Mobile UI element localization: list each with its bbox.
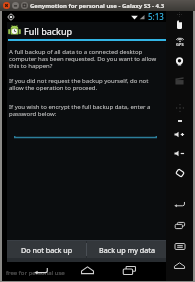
button[interactable]: Home: [166, 257, 193, 273]
button[interactable]: Volume down: [166, 145, 193, 161]
button[interactable]: Back up my data: [87, 241, 166, 258]
staticText: 5:13: [148, 11, 164, 22]
button[interactable]: Back: [166, 196, 193, 212]
button[interactable]: Battery: [166, 16, 193, 32]
button[interactable]: Recent apps: [166, 217, 193, 233]
button[interactable]: Minimize: [12, 2, 19, 9]
staticText: Do not back up: [21, 245, 73, 255]
button[interactable]: Recent apps: [116, 262, 142, 278]
staticText: Genymotion for personal use - Galaxy S3 …: [30, 2, 165, 10]
button[interactable]: Rotate screen: [166, 165, 193, 181]
staticText: GPS: [176, 42, 184, 47]
staticText: free for personal use: [6, 269, 65, 277]
button[interactable]: Home: [74, 262, 100, 278]
button[interactable]: Volume up: [166, 126, 193, 142]
staticText: Back up my data: [99, 245, 155, 255]
button[interactable]: Maximize: [21, 2, 28, 9]
button[interactable]: Menu: [166, 238, 193, 254]
staticText: If you wish to encrypt the full backup d…: [9, 103, 151, 118]
button[interactable]: Record video: [166, 73, 193, 89]
staticText: A full backup of all data to a connected…: [9, 48, 157, 70]
button[interactable]: Password field: [14, 130, 157, 139]
button[interactable]: Close: [3, 2, 10, 9]
button[interactable]: Divider: [166, 113, 193, 129]
button[interactable]: Move: [166, 100, 193, 116]
button[interactable]: Back: [28, 262, 54, 278]
staticText: Full backup: [24, 25, 73, 37]
button[interactable]: Do not back up: [7, 241, 86, 258]
button[interactable]: GPS: [166, 34, 193, 50]
button[interactable]: Drag handle: [166, 6, 193, 22]
button[interactable]: Camera: [166, 53, 193, 69]
staticText: If you did not request the backup yourse…: [9, 77, 149, 92]
